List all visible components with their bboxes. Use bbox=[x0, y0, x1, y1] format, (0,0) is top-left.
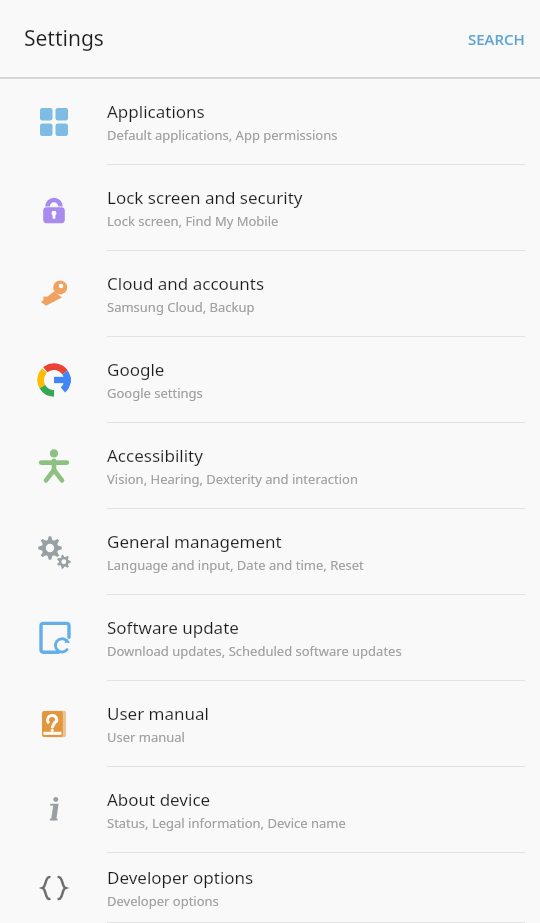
button[interactable]: Software update bbox=[0, 595, 540, 681]
staticText: Language and input, Date and time, Reset bbox=[107, 556, 364, 574]
button[interactable]: Applications bbox=[0, 79, 540, 165]
staticText: Software update bbox=[107, 616, 239, 639]
staticText: Google bbox=[107, 358, 165, 381]
button[interactable]: User manual bbox=[0, 681, 540, 767]
staticText: User manual bbox=[107, 702, 209, 725]
staticText: Vision, Hearing, Dexterity and interacti… bbox=[107, 470, 358, 488]
staticText: SEARCH bbox=[468, 29, 525, 49]
button[interactable]: Accessibility bbox=[0, 423, 540, 509]
staticText: Lock screen, Find My Mobile bbox=[107, 212, 279, 230]
staticText: Developer options bbox=[107, 892, 219, 910]
staticText: Settings bbox=[24, 24, 104, 53]
staticText: Default applications, App permissions bbox=[107, 126, 338, 144]
button[interactable]: Developer options bbox=[0, 853, 540, 923]
button[interactable]: SEARCH bbox=[453, 17, 540, 61]
staticText: Download updates, Scheduled software upd… bbox=[107, 642, 402, 660]
staticText: Google settings bbox=[107, 384, 203, 402]
button[interactable]: Lock screen and security bbox=[0, 165, 540, 251]
button[interactable]: General management bbox=[0, 509, 540, 595]
staticText: Cloud and accounts bbox=[107, 272, 265, 295]
staticText: Developer options bbox=[107, 866, 254, 889]
staticText: Status, Legal information, Device name bbox=[107, 814, 346, 832]
staticText: General management bbox=[107, 530, 282, 553]
staticText: Applications bbox=[107, 100, 205, 123]
staticText: Lock screen and security bbox=[107, 186, 303, 209]
button[interactable]: About device bbox=[0, 767, 540, 853]
button[interactable]: Cloud and accounts bbox=[0, 251, 540, 337]
staticText: About device bbox=[107, 788, 211, 811]
staticText: User manual bbox=[107, 728, 185, 746]
staticText: Samsung Cloud, Backup bbox=[107, 298, 255, 316]
button[interactable]: Google bbox=[0, 337, 540, 423]
staticText: Accessibility bbox=[107, 444, 203, 467]
